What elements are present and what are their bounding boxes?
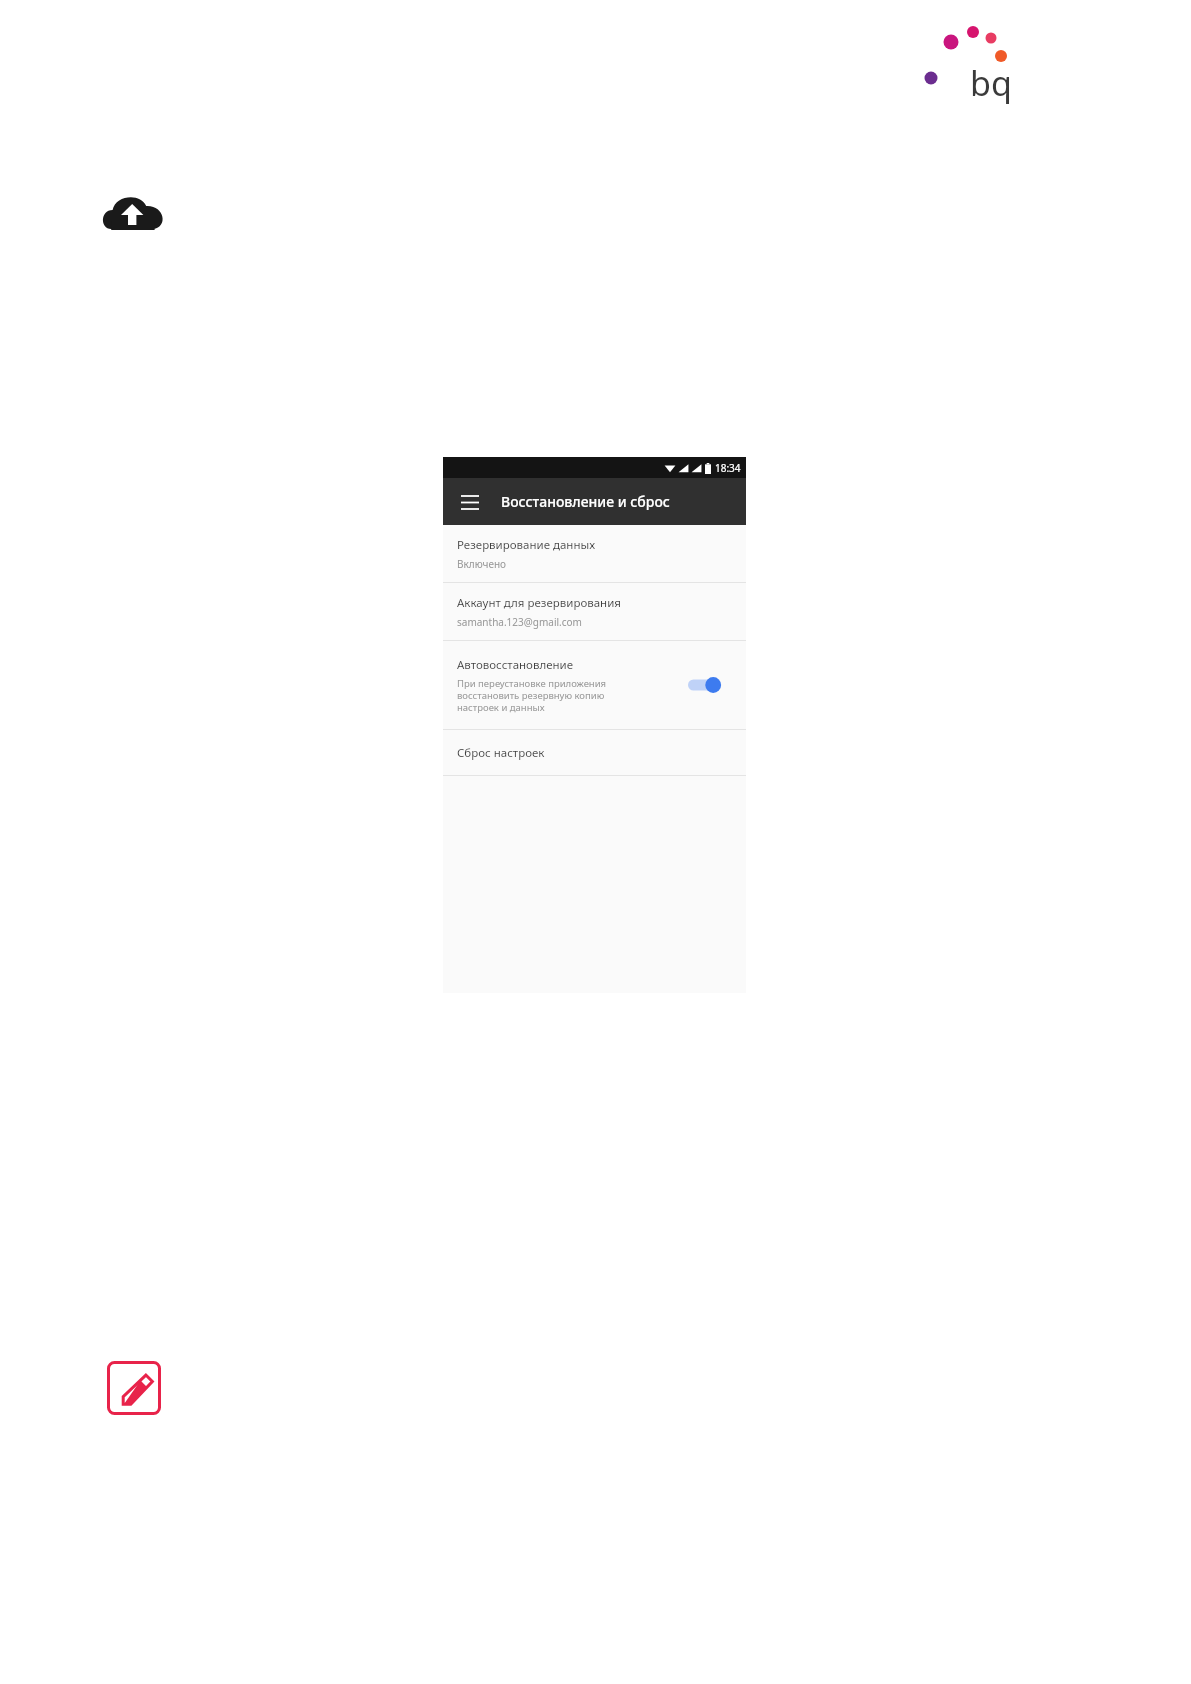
button[interactable]: Автовосстановление (443, 641, 746, 729)
staticText: samantha.123@gmail.com (457, 615, 582, 629)
staticText: При переустановке приложения восстановит… (457, 677, 607, 714)
button[interactable]: Резервирование данных (443, 525, 746, 582)
staticText: Сброс настроек (457, 745, 545, 761)
other: Backup (100, 190, 170, 240)
staticText: Резервирование данных (457, 537, 596, 553)
other: Note (107, 1361, 161, 1415)
button[interactable]: Сброс настроек (443, 730, 746, 775)
staticText: Автовосстановление (457, 657, 574, 673)
button[interactable]: Аккаунт для резервирования (443, 583, 746, 640)
staticText: Включено (457, 557, 507, 571)
staticText: Восстановление и сброс (501, 492, 670, 511)
staticText: 18:34 (715, 461, 741, 475)
staticText: Аккаунт для резервирования (457, 595, 621, 611)
staticText: bq (970, 60, 1012, 106)
button[interactable]: Auto restore toggle (686, 673, 726, 697)
button[interactable]: Menu (455, 487, 485, 517)
